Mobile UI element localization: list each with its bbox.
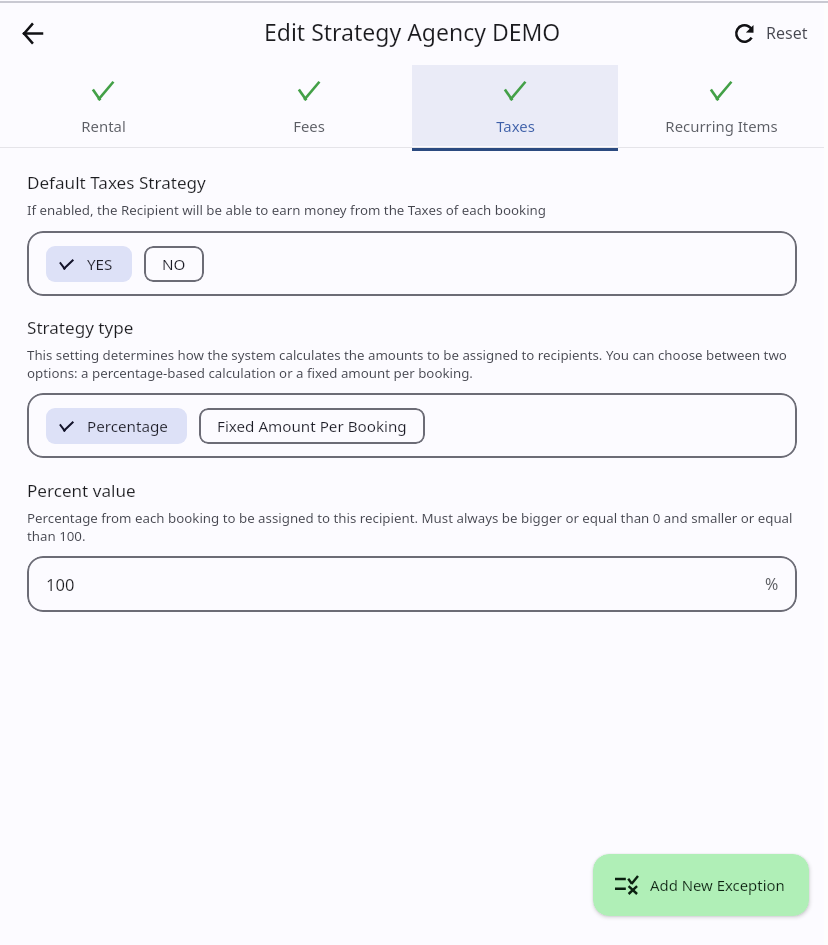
- staticText: 100: [46, 573, 75, 595]
- staticText: Rental: [81, 116, 126, 136]
- staticText: Fixed Amount Per Booking: [217, 416, 407, 437]
- staticText: Percent value: [27, 479, 136, 502]
- button[interactable]: Reset: [729, 16, 814, 50]
- staticText: Recurring Items: [665, 116, 778, 136]
- button[interactable]: Add New Exception: [593, 854, 809, 916]
- staticText: Taxes: [496, 116, 535, 136]
- button[interactable]: NO: [144, 246, 204, 282]
- button[interactable]: Back: [8, 9, 56, 57]
- button[interactable]: Fixed Amount Per Booking: [199, 408, 425, 444]
- staticText: Strategy type: [27, 316, 134, 339]
- button[interactable]: Fees: [206, 65, 412, 151]
- button[interactable]: Percentage: [46, 408, 187, 444]
- staticText: Default Taxes Strategy: [27, 171, 206, 194]
- staticText: If enabled, the Recipient will be able t…: [27, 201, 809, 219]
- staticText: %: [765, 573, 779, 595]
- button[interactable]: Recurring Items: [618, 65, 824, 151]
- staticText: YES: [87, 254, 113, 275]
- button[interactable]: Taxes: [412, 65, 618, 151]
- staticText: Reset: [766, 22, 808, 44]
- button[interactable]: Rental: [0, 65, 206, 151]
- button[interactable]: YES: [46, 246, 132, 282]
- staticText: Percentage from each booking to be assig…: [27, 509, 809, 545]
- staticText: Add New Exception: [650, 875, 785, 895]
- staticText: This setting determines how the system c…: [27, 346, 809, 382]
- staticText: Percentage: [87, 416, 168, 437]
- staticText: Fees: [293, 116, 325, 136]
- button[interactable]: 100: [27, 556, 797, 612]
- staticText: NO: [162, 254, 186, 275]
- staticText: Edit Strategy Agency DEMO: [264, 16, 561, 47]
